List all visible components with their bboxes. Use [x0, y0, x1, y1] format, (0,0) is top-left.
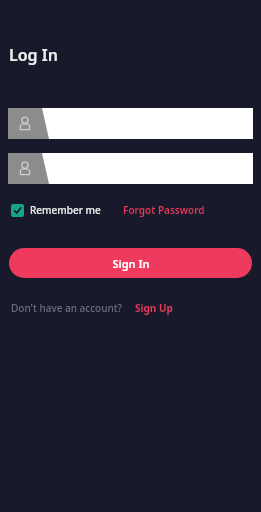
- other: Account: [8, 153, 253, 184]
- button[interactable]: Sign In: [9, 248, 252, 278]
- staticText: Don't have an account?: [11, 301, 123, 315]
- staticText: Log In: [9, 44, 58, 66]
- other: Account: [8, 108, 253, 139]
- button[interactable]: Remember me: [11, 203, 101, 217]
- staticText: Sign In: [112, 256, 150, 271]
- button[interactable]: Account: [8, 153, 253, 184]
- button[interactable]: Account: [8, 108, 253, 139]
- staticText: Remember me: [30, 203, 101, 217]
- button[interactable]: Forgot Password: [123, 203, 205, 217]
- button[interactable]: Sign Up: [135, 301, 173, 315]
